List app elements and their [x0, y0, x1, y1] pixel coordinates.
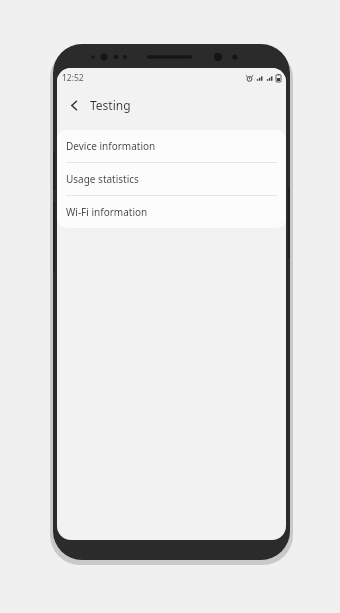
staticText: Device information — [66, 139, 156, 153]
staticText: Wi-Fi information — [66, 205, 148, 219]
button[interactable]: Usage statistics — [57, 163, 286, 195]
staticText: Testing — [90, 97, 131, 113]
staticText: Usage statistics — [66, 172, 139, 186]
button[interactable]: Wi-Fi information — [57, 196, 286, 228]
button[interactable]: Back — [63, 94, 85, 116]
button[interactable]: Device information — [57, 130, 286, 162]
staticText: 12:52 — [62, 72, 84, 84]
